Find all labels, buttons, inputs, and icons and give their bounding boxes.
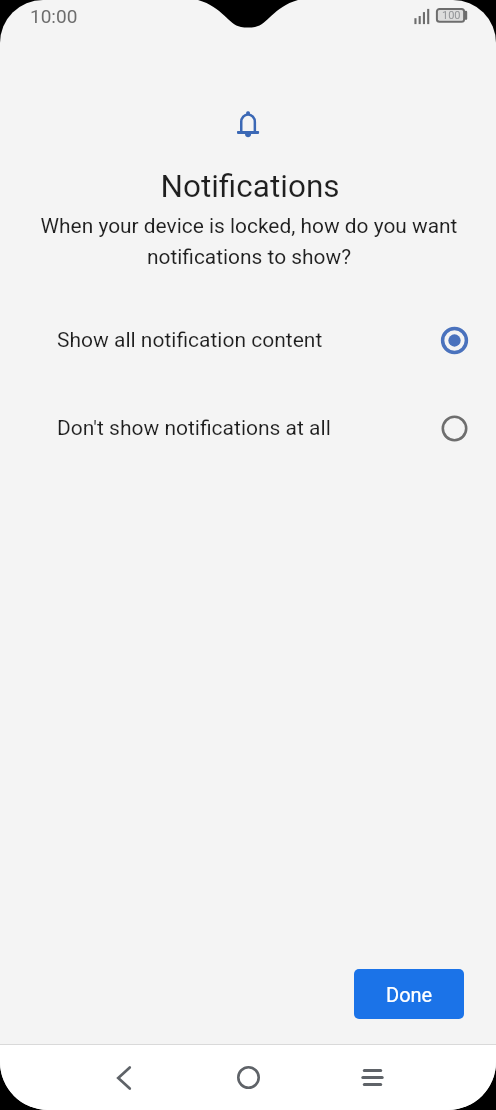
button[interactable]: Done <box>354 969 464 1019</box>
button[interactable]: Recent apps <box>341 1045 403 1110</box>
button[interactable]: Show all notification content <box>0 318 496 362</box>
button[interactable]: Home <box>217 1045 279 1110</box>
button[interactable]: Back <box>93 1045 155 1110</box>
staticText: When your device is locked, how do you w… <box>1 214 496 269</box>
staticText: 10:00 <box>30 5 78 27</box>
staticText: Notifications <box>2 168 496 205</box>
staticText: 100 <box>442 9 461 22</box>
button[interactable]: Don't show notifications at all <box>0 406 496 450</box>
staticText: Show all notification content <box>57 328 323 353</box>
staticText: Don't show notifications at all <box>57 416 331 441</box>
staticText: Done <box>386 983 433 1006</box>
